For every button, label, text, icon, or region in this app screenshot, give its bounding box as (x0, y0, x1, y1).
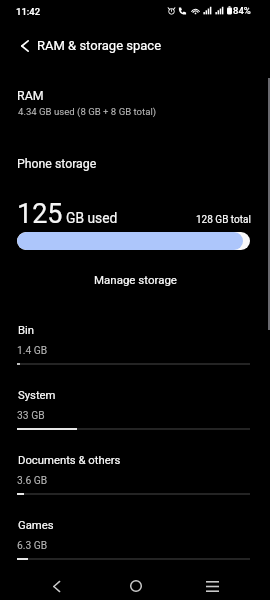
staticText: Games (18, 519, 54, 532)
button[interactable]: Back (11, 32, 39, 60)
staticText: 33 GB (17, 409, 45, 421)
staticText: Manage storage (94, 273, 177, 286)
button[interactable]: Recent apps (194, 573, 231, 599)
staticText: Bin (18, 324, 35, 337)
button[interactable]: System (0, 383, 270, 441)
button[interactable]: Manage storage (78, 267, 193, 292)
button[interactable]: Back (38, 573, 75, 599)
button[interactable]: Home (117, 573, 154, 599)
staticText: RAM (17, 88, 44, 103)
staticText: Documents & others (18, 454, 121, 467)
button[interactable]: Documents & others (0, 448, 270, 506)
staticText: 128 GB total (196, 214, 251, 226)
staticText: 3.6 GB (17, 474, 48, 486)
button[interactable]: Games (0, 513, 270, 571)
staticText: GB used (66, 210, 118, 226)
staticText: 1.4 GB (17, 344, 48, 356)
staticText: System (18, 389, 56, 402)
staticText: 125 (17, 198, 63, 230)
staticText: RAM & storage space (37, 38, 162, 53)
button[interactable]: Bin (0, 318, 270, 376)
staticText: 6.3 GB (17, 539, 48, 551)
staticText: Phone storage (17, 157, 97, 171)
staticText: 84% (233, 5, 251, 16)
staticText: 4.34 GB used (8 GB + 8 GB total) (18, 106, 157, 117)
staticText: 11:42 (16, 6, 41, 17)
